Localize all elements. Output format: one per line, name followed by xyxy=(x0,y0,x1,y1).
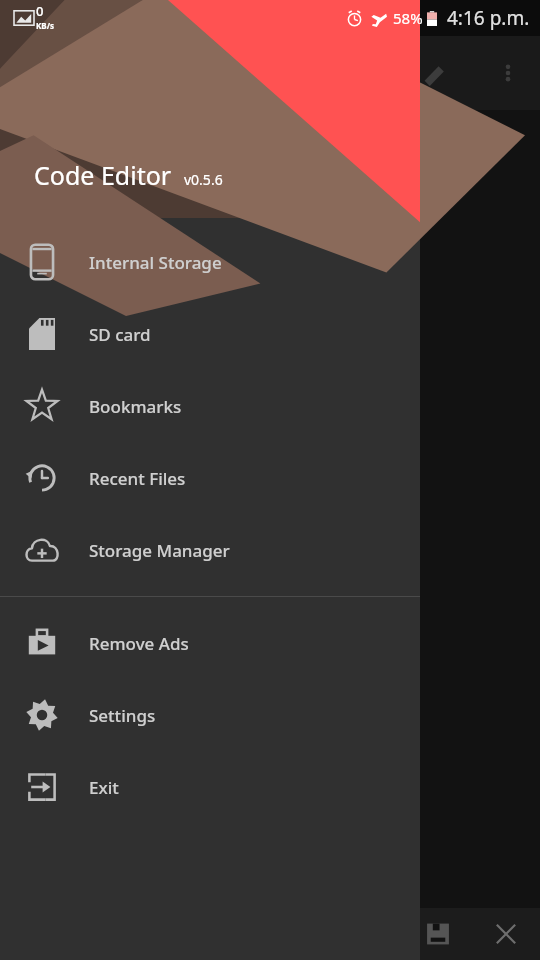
staticText: v0.5.6 xyxy=(184,170,223,189)
staticText: SD card xyxy=(89,323,151,346)
button[interactable]: Exit xyxy=(0,751,420,823)
staticText: Internal Storage xyxy=(89,251,222,274)
button[interactable]: Settings xyxy=(0,679,420,751)
staticText: KB/s xyxy=(36,20,54,31)
button[interactable]: Recent Files xyxy=(0,442,420,514)
staticText: Code Editor xyxy=(34,158,172,192)
staticText: Storage Manager xyxy=(89,539,230,562)
button[interactable]: Close xyxy=(482,910,530,958)
staticText: Recent Files xyxy=(89,467,186,490)
staticText: 0 xyxy=(36,2,44,20)
staticText: Settings xyxy=(89,704,156,727)
staticText: Exit xyxy=(89,776,119,799)
button[interactable]: More options xyxy=(484,49,532,97)
button[interactable]: Storage Manager xyxy=(0,514,420,586)
staticText: Remove Ads xyxy=(89,632,189,655)
button[interactable]: Internal Storage xyxy=(0,226,420,298)
staticText: 58% xyxy=(393,8,423,28)
button[interactable]: SD card xyxy=(0,298,420,370)
button[interactable]: Edit xyxy=(412,49,460,97)
button[interactable]: Bookmarks xyxy=(0,370,420,442)
button[interactable]: Remove Ads xyxy=(0,607,420,679)
button[interactable]: Save xyxy=(414,910,462,958)
staticText: 4:16 p.m. xyxy=(447,5,530,31)
staticText: Bookmarks xyxy=(89,395,182,418)
